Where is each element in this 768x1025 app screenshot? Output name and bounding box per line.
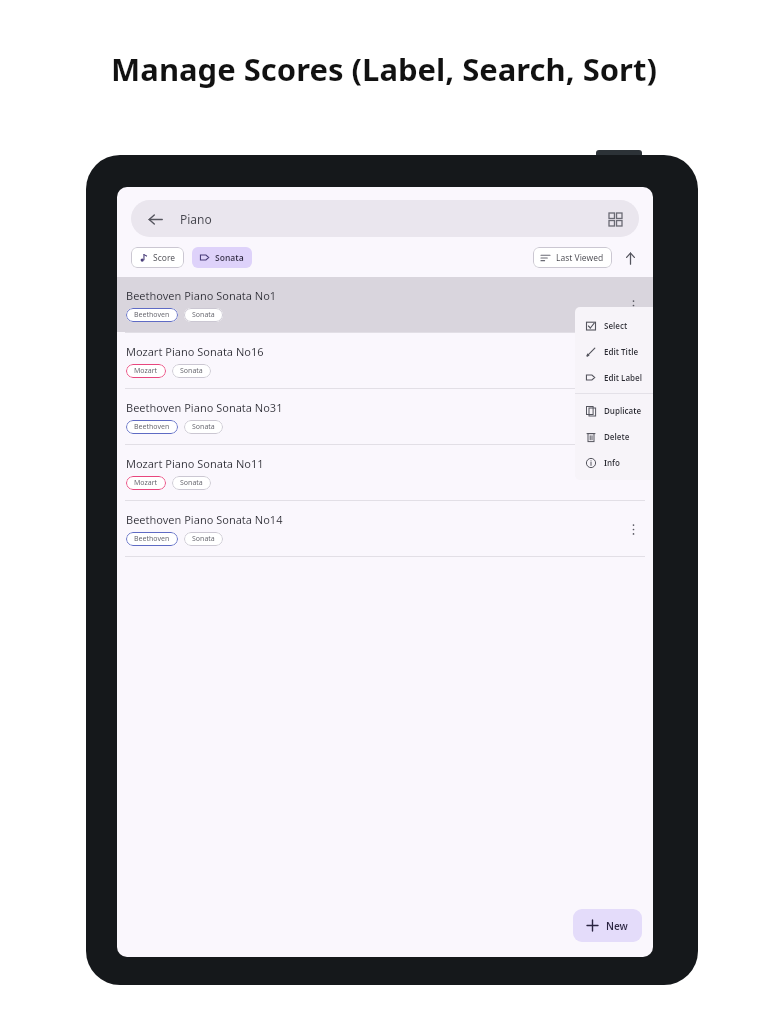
staticText: Beethoven Piano Sonata No1 [126, 288, 277, 303]
staticText: Mozart Piano Sonata No11 [126, 456, 264, 471]
button[interactable]: More options [622, 406, 644, 428]
staticText: Beethoven [134, 310, 170, 320]
staticText: Select [604, 320, 628, 331]
button[interactable]: Back [131, 200, 639, 237]
button[interactable]: Sonata [184, 308, 223, 322]
button[interactable]: Sort ascending [621, 249, 639, 267]
staticText: Score [153, 252, 176, 264]
button[interactable]: More options [622, 294, 644, 316]
button[interactable]: Info [575, 449, 653, 475]
button[interactable]: Sonata [172, 364, 211, 378]
button[interactable]: Beethoven [126, 420, 178, 434]
staticText: Sonata [192, 310, 215, 320]
button[interactable]: Mozart [126, 476, 166, 490]
button[interactable]: Mozart Piano Sonata No16 [117, 333, 653, 388]
staticText: Sonata [180, 478, 203, 488]
button[interactable]: Edit Title [575, 338, 653, 364]
staticText: Sonata [192, 422, 215, 432]
staticText: Duplicate [604, 405, 642, 416]
staticText: Piano [180, 211, 212, 227]
button[interactable]: Back [144, 208, 166, 230]
button[interactable]: Duplicate [575, 397, 653, 423]
button[interactable]: New [573, 909, 642, 942]
button[interactable]: Beethoven Piano Sonata No31 [117, 389, 653, 444]
button[interactable]: Last Viewed [533, 247, 612, 268]
staticText: Beethoven [134, 534, 170, 544]
staticText: New [606, 919, 628, 933]
staticText: Edit Label [604, 372, 643, 383]
staticText: Info [604, 457, 620, 468]
button[interactable]: Beethoven Piano Sonata No14 [117, 501, 653, 556]
button[interactable]: Sonata [184, 420, 223, 434]
button[interactable]: More options [622, 518, 644, 540]
staticText: Mozart [134, 366, 158, 376]
staticText: Edit Title [604, 346, 639, 357]
button[interactable]: Sonata [184, 532, 223, 546]
button[interactable]: Select [575, 312, 653, 338]
staticText: Delete [604, 431, 630, 442]
staticText: Sonata [215, 252, 244, 264]
staticText: Beethoven [134, 422, 170, 432]
button[interactable]: More options [622, 350, 644, 372]
staticText: Beethoven Piano Sonata No31 [126, 400, 283, 415]
button[interactable]: Beethoven [126, 532, 178, 546]
button[interactable]: Mozart Piano Sonata No11 [117, 445, 653, 500]
staticText: Beethoven Piano Sonata No14 [126, 512, 283, 527]
staticText: Sonata [180, 366, 203, 376]
button[interactable]: Beethoven [126, 308, 178, 322]
staticText: Sonata [192, 534, 215, 544]
button[interactable]: Edit Label [575, 364, 653, 390]
staticText: Mozart Piano Sonata No16 [126, 344, 264, 359]
staticText: Mozart [134, 478, 158, 488]
button[interactable]: Mozart [126, 364, 166, 378]
button[interactable]: Beethoven Piano Sonata No1 [117, 277, 653, 332]
button[interactable]: Sonata [172, 476, 211, 490]
button[interactable]: Delete [575, 423, 653, 449]
button[interactable]: Sonata [192, 247, 252, 268]
button[interactable]: Score [131, 247, 184, 268]
staticText: Manage Scores (Label, Search, Sort) [111, 48, 657, 90]
button[interactable]: Grid view [604, 208, 626, 230]
staticText: Last Viewed [556, 252, 604, 264]
